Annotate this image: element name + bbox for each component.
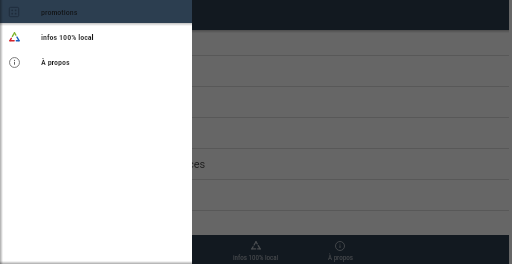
- staticText: promotions: [41, 8, 78, 17]
- button[interactable]: Promotions: [0, 56, 509, 87]
- button[interactable]: Nouveautés: [0, 118, 509, 149]
- button[interactable]: infos 100% local: [0, 25, 192, 49]
- button[interactable]: [0, 0, 512, 264]
- staticText: infos 100% local: [41, 33, 94, 42]
- button[interactable]: Réductions: [0, 180, 509, 211]
- button[interactable]: Toutes les promos de vos commerces: [0, 149, 509, 180]
- button[interactable]: À propos: [298, 235, 382, 264]
- button[interactable]: infos 100% local: [214, 235, 298, 264]
- other: App icon: [9, 7, 19, 17]
- staticText: À propos: [328, 254, 353, 262]
- staticText: infos 100% local: [233, 254, 279, 262]
- staticText: Promotions: [19, 65, 77, 78]
- staticText: Toutes les promos de vos commerces: [19, 158, 206, 171]
- button[interactable]: Offres: [0, 87, 509, 118]
- button[interactable]: À propos: [0, 50, 192, 74]
- staticText: Bons plans: [19, 34, 74, 47]
- staticText: À propos: [41, 58, 70, 67]
- button[interactable]: Catalogues: [0, 211, 509, 242]
- button[interactable]: Bons plans: [0, 25, 509, 56]
